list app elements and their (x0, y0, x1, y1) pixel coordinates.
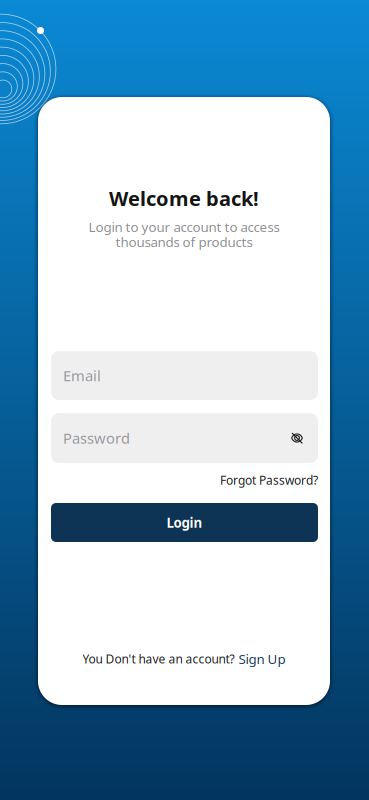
staticText: Forgot Password? (220, 472, 318, 488)
button[interactable]: Sign Up (238, 650, 285, 668)
staticText: thousands of products (115, 233, 252, 251)
staticText: Login to your account to access (88, 218, 279, 236)
staticText: You Don't have an account? (82, 651, 234, 667)
staticText: Password (63, 428, 130, 448)
button[interactable]: Forgot Password? (51, 472, 318, 488)
button[interactable]: Login (51, 503, 318, 542)
staticText: Email (63, 366, 101, 385)
staticText: Welcome back! (109, 185, 259, 212)
staticText: Sign Up (238, 650, 285, 668)
staticText: Login (166, 514, 202, 531)
